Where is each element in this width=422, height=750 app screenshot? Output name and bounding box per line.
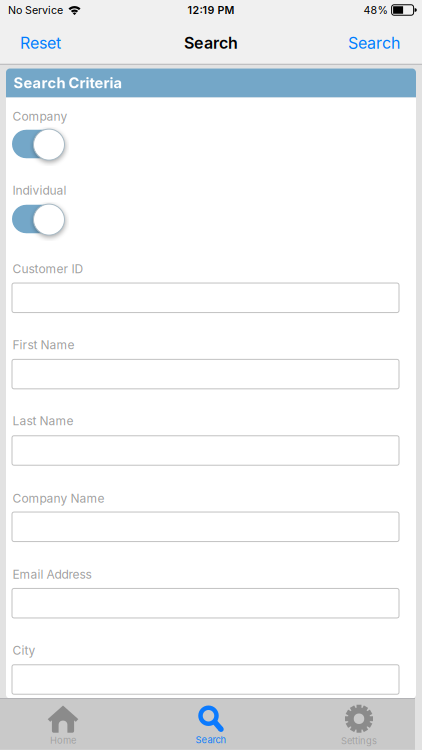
button[interactable]: Email Address [12,588,399,618]
button[interactable]: City [12,665,399,694]
staticText: City [12,643,35,657]
button[interactable]: Last Name [12,436,399,465]
staticText: Search [184,34,238,52]
button[interactable]: Company [12,129,64,158]
button[interactable]: Individual [12,204,64,233]
staticText: Email Address [12,567,91,581]
staticText: Individual [12,183,66,198]
staticText: Last Name [12,414,73,428]
staticText: Search Criteria [13,74,122,92]
staticText: Customer ID [12,262,83,276]
button[interactable]: Home [0,700,133,750]
staticText: First Name [12,338,74,352]
staticText: Company Name [12,491,104,505]
staticText: 48% [364,4,388,16]
staticText: Company [12,109,67,124]
staticText: Search [348,34,400,52]
button[interactable]: Company Name [12,512,399,541]
staticText: 12:19 PM [187,4,234,16]
button[interactable]: First Name [12,359,399,389]
button[interactable]: Reset [20,34,61,52]
button[interactable]: Search [348,34,400,52]
staticText: No Service [8,4,63,16]
button[interactable]: Settings [289,700,422,750]
staticText: Settings [341,735,377,746]
button[interactable]: Search [141,700,281,750]
button[interactable]: Customer ID [12,283,399,313]
staticText: Reset [20,34,61,52]
staticText: Home [50,735,76,746]
staticText: Search [195,734,226,745]
